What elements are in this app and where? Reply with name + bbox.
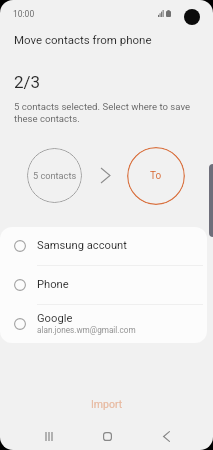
button[interactable]: Import [0, 391, 213, 417]
button[interactable]: Home [78, 422, 137, 450]
button[interactable]: Phone [0, 266, 207, 304]
staticText: Samsung account [37, 239, 127, 252]
button[interactable]: Google [0, 305, 207, 343]
staticText: alan.jones.wm@gmail.com [37, 325, 136, 335]
staticText: 5 contacts [33, 170, 77, 181]
staticText: Move contacts from phone [14, 33, 152, 46]
button[interactable]: Samsung account [0, 227, 207, 265]
button[interactable]: Back [137, 422, 196, 450]
staticText: Google [37, 312, 73, 325]
button[interactable]: 5 contacts [27, 148, 82, 203]
staticText: Phone [37, 278, 69, 291]
button[interactable]: Recents [19, 422, 78, 450]
button[interactable]: To [127, 147, 185, 205]
staticText: 2/3 [14, 72, 41, 92]
staticText: Import [91, 398, 123, 410]
staticText: To [150, 170, 162, 182]
staticText: 10:00 [13, 9, 35, 19]
staticText: 5 contacts selected. Select where to sav… [14, 101, 191, 124]
